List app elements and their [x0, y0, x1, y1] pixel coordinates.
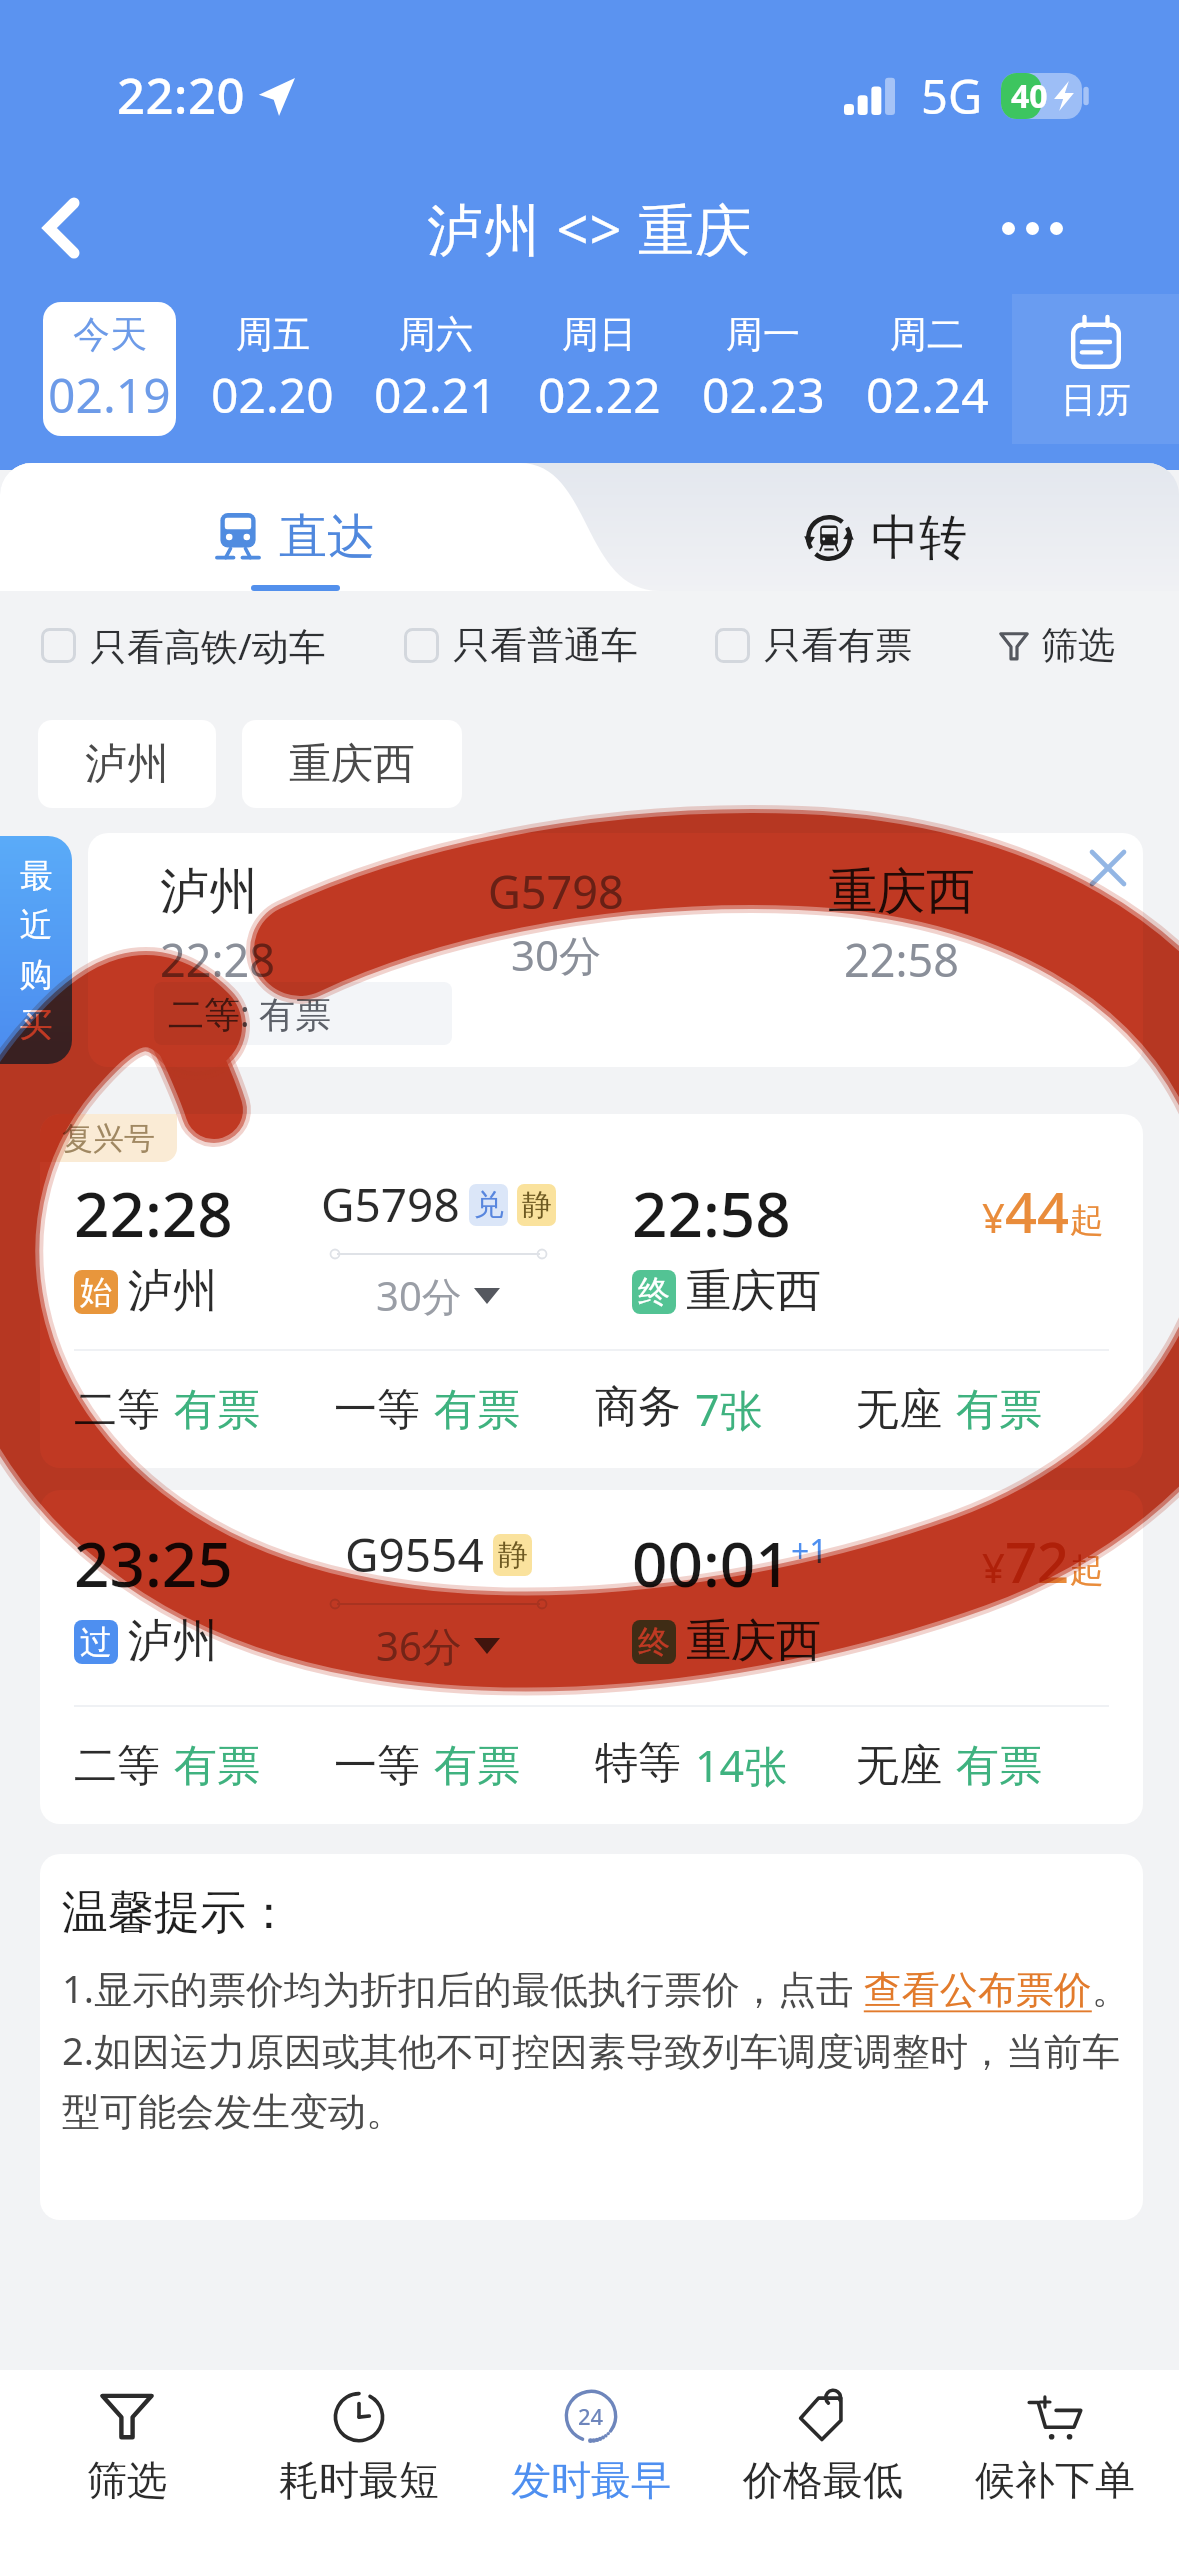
button[interactable]: 筛选 [999, 622, 1115, 669]
staticText: 商务 [595, 1380, 681, 1434]
staticText: 72 [1005, 1523, 1070, 1599]
staticText: 只看普通车 [453, 622, 638, 669]
staticText: 02.19 [48, 362, 171, 427]
staticText: 筛选 [87, 2455, 167, 2505]
button[interactable]: 泸州 [88, 833, 1143, 1067]
staticText: 静 [522, 1186, 552, 1224]
staticText: 一等 [334, 1383, 420, 1437]
staticText: 耗时最短 [279, 2455, 439, 2505]
staticText: 筛选 [1041, 622, 1115, 669]
staticText: G5798 [488, 861, 624, 922]
button[interactable]: Close [1073, 833, 1143, 903]
staticText: ¥ [982, 1190, 1005, 1244]
staticText: 二等 [74, 1739, 160, 1793]
staticText: 泸州 [128, 1263, 218, 1320]
button[interactable]: 周二 [860, 302, 994, 436]
staticText: 兑 [474, 1186, 504, 1224]
button[interactable]: 价格最低 [707, 2370, 939, 2522]
staticText: 最近购买 [18, 855, 54, 1046]
staticText: 02.23 [702, 362, 825, 427]
staticText: 起 [1070, 1549, 1104, 1592]
button[interactable]: 直达 [0, 463, 590, 591]
staticText: 有票 [956, 1383, 1042, 1437]
staticText: 始 [80, 1272, 112, 1312]
button[interactable]: 复兴号 [40, 1114, 1143, 1468]
staticText: 今天 [73, 311, 147, 358]
button[interactable]: 候补下单 [939, 2370, 1171, 2522]
staticText: 直达 [279, 507, 375, 567]
staticText: 泸州 [128, 1613, 218, 1670]
staticText: 重庆西 [686, 1263, 821, 1320]
button[interactable]: 耗时最短 [243, 2370, 475, 2522]
button[interactable]: 周六 [369, 302, 502, 436]
staticText: 40 [1011, 74, 1048, 118]
button[interactable]: 周一 [696, 302, 830, 436]
staticText: 22:28 [160, 929, 276, 990]
button[interactable]: 只看有票 [715, 622, 912, 669]
staticText: 特等 [595, 1736, 681, 1790]
staticText: G9554 [345, 1523, 484, 1586]
staticText: 泸州 [160, 861, 258, 923]
button[interactable]: 日历 [1012, 294, 1179, 444]
staticText: 泸州 <> 重庆 [427, 190, 753, 266]
button[interactable]: 周五 [206, 302, 339, 436]
staticText: 重庆西 [289, 738, 415, 791]
staticText: G5798 [321, 1173, 460, 1236]
staticText: 重庆西 [686, 1613, 821, 1670]
staticText: 02.21 [374, 362, 497, 427]
staticText: 候补下单 [975, 2455, 1135, 2505]
staticText: 14张 [695, 1736, 788, 1795]
staticText: 日历 [1061, 378, 1131, 422]
button[interactable]: 中转 [590, 463, 1179, 591]
staticText: 02.22 [538, 362, 661, 427]
button[interactable]: 23:25 [40, 1490, 1143, 1824]
staticText: 周五 [236, 311, 310, 358]
staticText: 二等 [74, 1383, 160, 1437]
staticText: 有票 [434, 1383, 520, 1437]
staticText: 周六 [399, 311, 473, 358]
staticText: 有票 [174, 1739, 260, 1793]
staticText: 只看有票 [764, 622, 912, 669]
staticText: 重庆西 [828, 861, 975, 923]
staticText: 复兴号 [62, 1119, 155, 1158]
staticText: 价格最低 [743, 2455, 903, 2505]
staticText: 二等: 有票 [168, 989, 332, 1038]
staticText: 5G [921, 64, 983, 128]
staticText: 7张 [695, 1380, 763, 1439]
staticText: ¥ [982, 1540, 1005, 1594]
staticText: 02.24 [866, 362, 989, 427]
button[interactable]: 只看高铁/动车 [41, 620, 326, 671]
button[interactable]: 重庆西 [242, 720, 462, 808]
staticText: 发时最早 [511, 2455, 671, 2505]
button[interactable]: 泸州 [38, 720, 216, 808]
staticText: 44 [1005, 1173, 1070, 1249]
button[interactable]: 24 [475, 2370, 707, 2522]
staticText: 1.显示的票价均为折扣后的最低执行票价，点击 查看公布票价。 2.如因运力原因或… [62, 1962, 1135, 2136]
staticText: 02.20 [211, 362, 334, 427]
staticText: 静 [498, 1536, 528, 1574]
staticText: 00:01 [632, 1521, 791, 1605]
staticText: 周一 [726, 311, 800, 358]
staticText: 中转 [871, 508, 967, 568]
button[interactable]: 只看普通车 [404, 622, 638, 669]
staticText: 周二 [890, 311, 964, 358]
staticText: 终 [638, 1272, 670, 1312]
button[interactable]: 今天 [43, 302, 176, 436]
staticText: 泸州 [85, 738, 169, 791]
staticText: 22:20 [117, 62, 245, 129]
staticText: 无座 [856, 1383, 942, 1437]
staticText: 22:58 [632, 1171, 791, 1255]
staticText: +1 [791, 1529, 828, 1573]
button[interactable]: 最近购买 [0, 836, 72, 1064]
staticText: 30分 [511, 926, 602, 983]
staticText: 起 [1070, 1199, 1104, 1242]
staticText: 有票 [174, 1383, 260, 1437]
button[interactable]: Back [15, 182, 107, 274]
staticText: 有票 [956, 1739, 1042, 1793]
staticText: 22:28 [74, 1171, 233, 1255]
button[interactable]: More options [986, 182, 1078, 274]
staticText: 36分 [376, 1618, 462, 1673]
staticText: 30分 [376, 1268, 462, 1323]
button[interactable]: 筛选 [10, 2370, 243, 2522]
button[interactable]: 周日 [532, 302, 666, 436]
